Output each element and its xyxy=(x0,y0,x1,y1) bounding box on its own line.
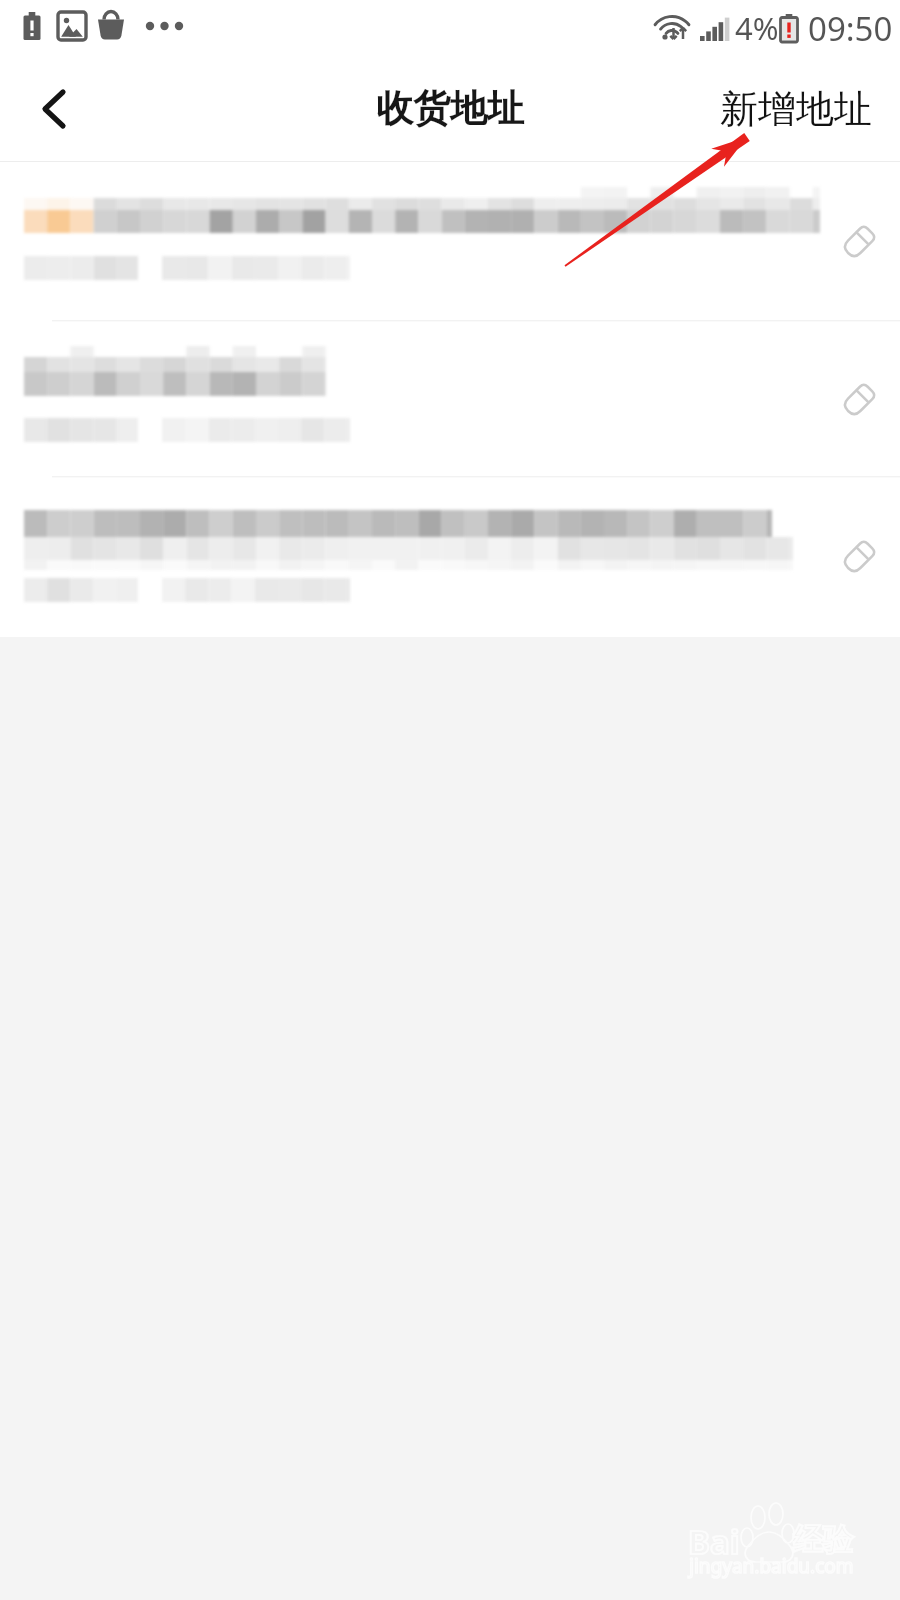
button[interactable]: Edit address xyxy=(830,371,888,429)
button[interactable]: Edit address xyxy=(830,213,888,271)
staticText: 收货地址 xyxy=(376,85,524,132)
staticText: Bai xyxy=(688,1519,740,1564)
button[interactable]: Edit address xyxy=(0,320,900,476)
button[interactable]: 新增地址 xyxy=(720,77,872,141)
staticText: jingyan.baidu.com xyxy=(689,1553,854,1579)
staticText: 新增地址 xyxy=(720,85,872,133)
staticText: 09:50 xyxy=(808,6,893,51)
staticText: 经验 xyxy=(793,1521,853,1559)
button[interactable]: Edit address xyxy=(0,162,900,320)
button[interactable]: Edit address xyxy=(830,528,888,586)
staticText: 4% xyxy=(735,7,779,49)
button[interactable]: Back xyxy=(22,81,78,137)
button[interactable]: Edit address xyxy=(0,476,900,637)
